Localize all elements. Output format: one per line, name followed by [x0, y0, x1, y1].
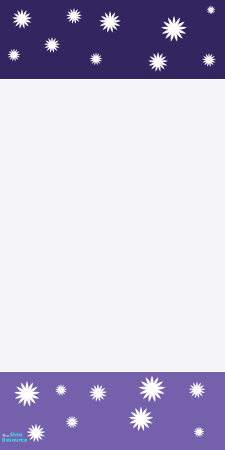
- staticText: Sims: [10, 431, 23, 438]
- staticText: The: [2, 433, 9, 438]
- button[interactable]: The Sims Resource: [2, 427, 48, 447]
- staticText: Resource: [2, 436, 27, 443]
